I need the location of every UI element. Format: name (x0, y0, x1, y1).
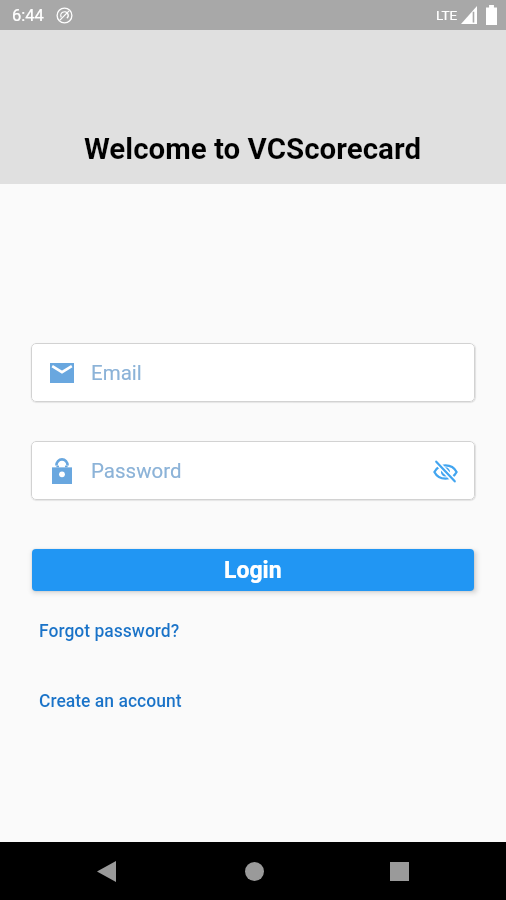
staticText: 6:44 (12, 6, 44, 25)
button[interactable]: Password (31, 441, 475, 500)
button[interactable]: Forgot password? (39, 621, 180, 642)
button[interactable]: Create an account (39, 691, 182, 712)
button[interactable]: Login (32, 549, 474, 591)
staticText: Forgot password? (39, 621, 180, 642)
staticText: Email (91, 361, 142, 385)
button[interactable]: Recent apps (375, 847, 423, 895)
staticText: Create an account (39, 691, 182, 712)
button[interactable]: Show password (430, 456, 460, 486)
staticText: Password (91, 459, 182, 483)
button[interactable]: Back (82, 847, 130, 895)
button[interactable]: Home (230, 847, 278, 895)
button[interactable]: Email (31, 343, 475, 402)
staticText: Login (224, 557, 282, 584)
staticText: LTE (436, 7, 458, 23)
staticText: Welcome to VCScorecard (84, 132, 422, 167)
